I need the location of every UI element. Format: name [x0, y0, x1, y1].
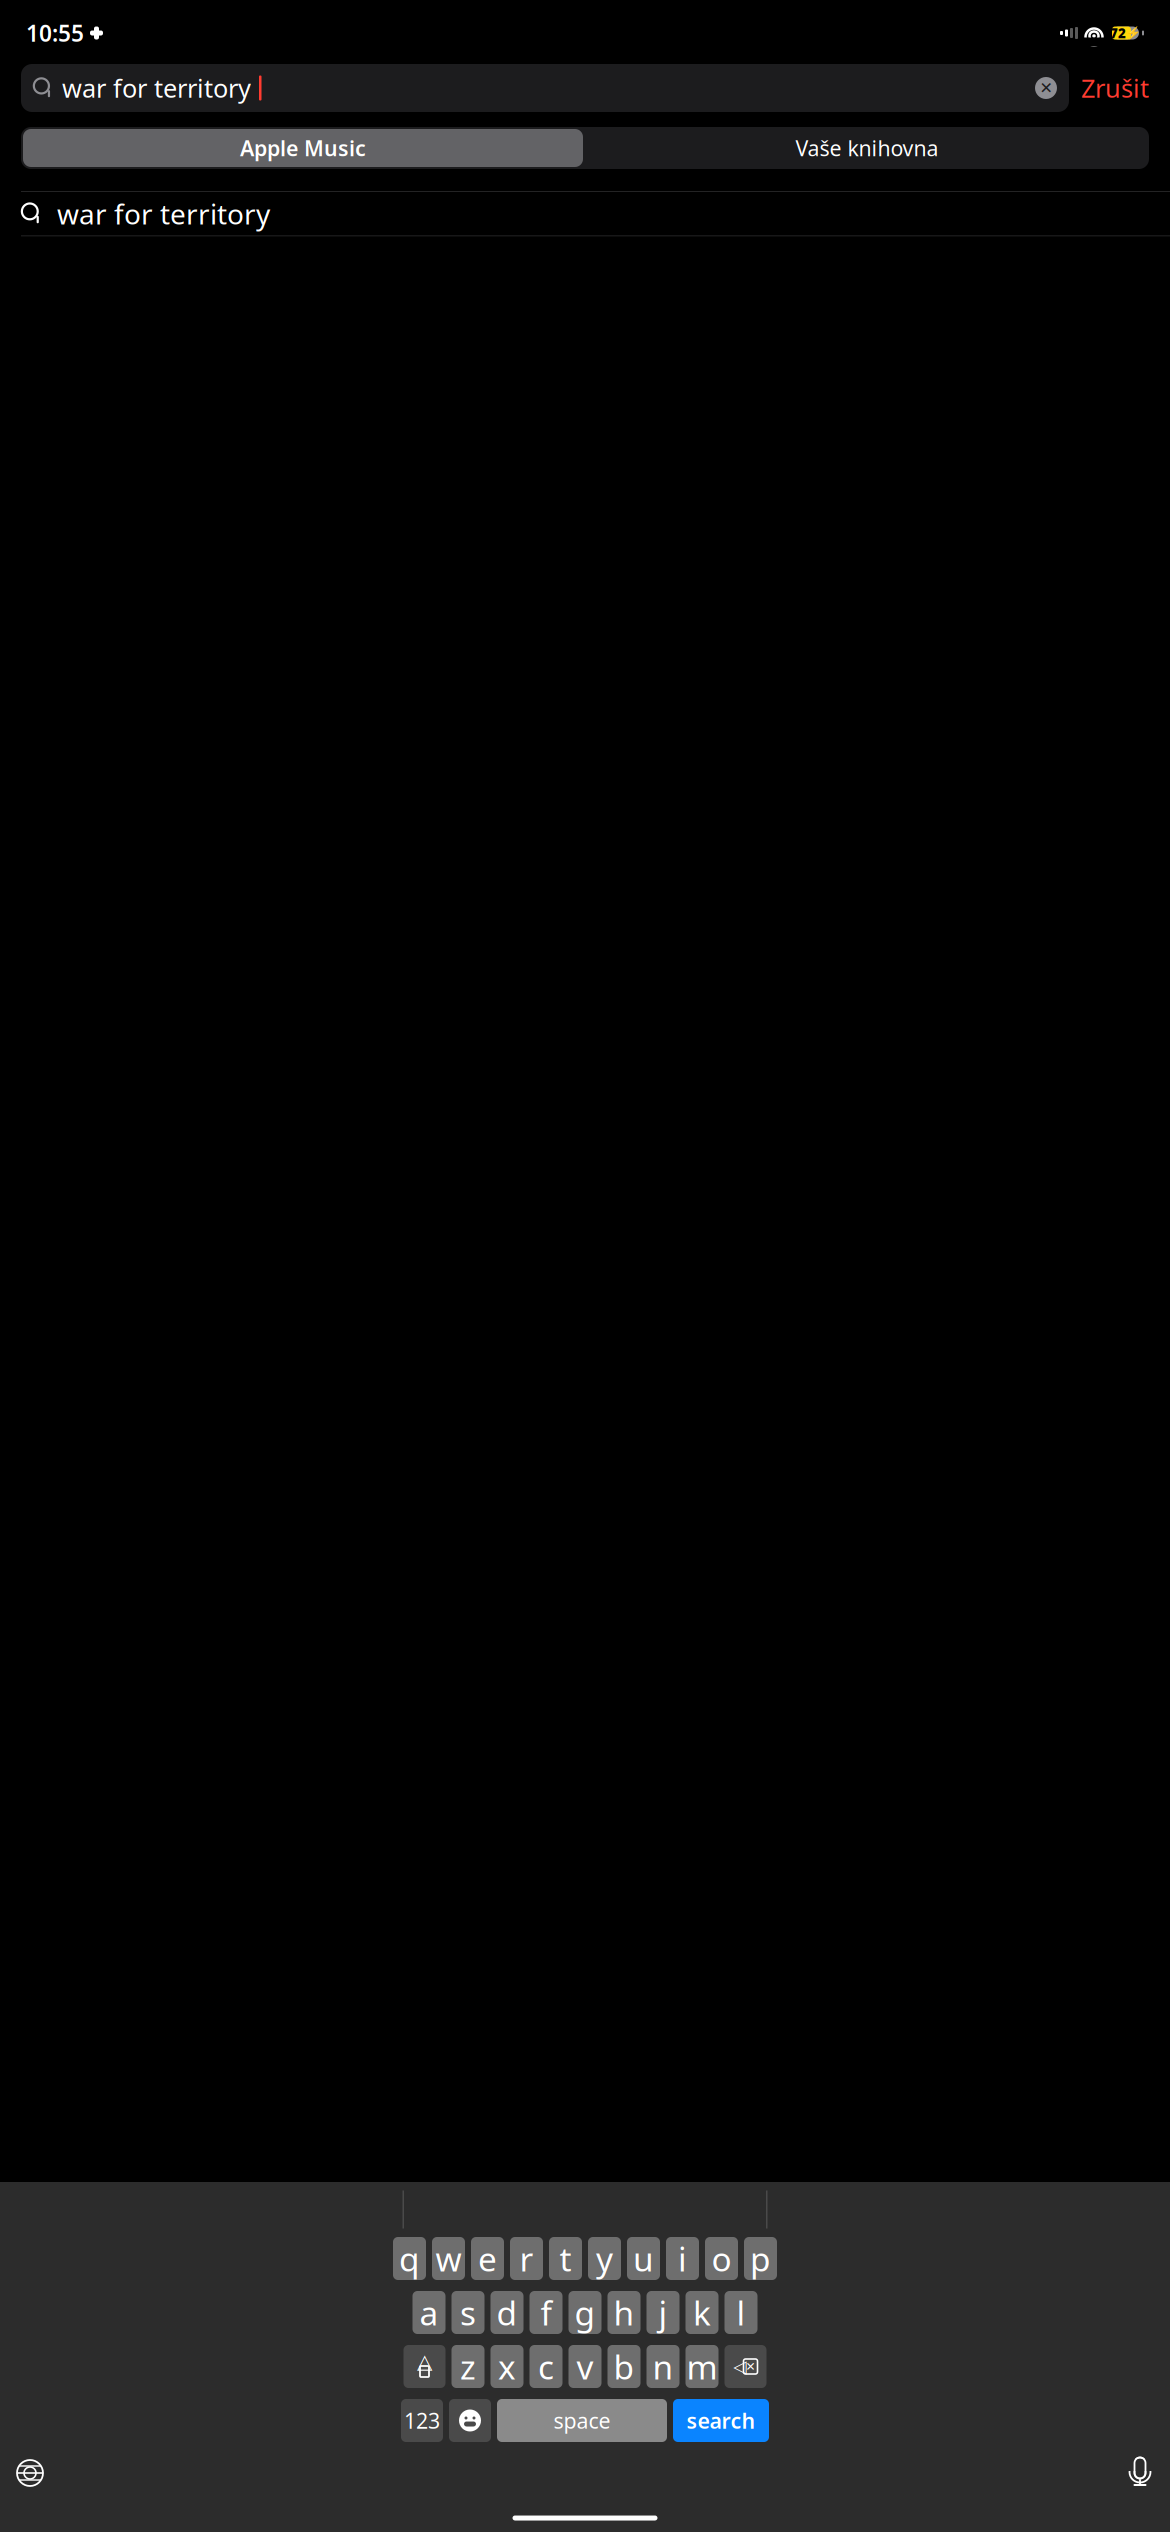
button[interactable]: Next keyboard — [8, 2451, 52, 2495]
staticText: w — [435, 2236, 461, 2281]
button[interactable]: Shift — [403, 2345, 445, 2388]
staticText: ◁ — [733, 2357, 746, 2376]
staticText: a — [419, 2290, 438, 2335]
staticText: ⚡ — [1126, 26, 1141, 40]
staticText: 123 — [404, 2406, 440, 2435]
staticText: h — [613, 2290, 634, 2335]
staticText: space — [553, 2406, 610, 2435]
button[interactable]: Delete — [724, 2345, 766, 2388]
staticText: 10:55 — [26, 18, 84, 48]
staticText: s — [460, 2290, 476, 2335]
button[interactable]: 123 — [401, 2399, 443, 2442]
button[interactable]: d — [490, 2291, 523, 2334]
staticText: c — [538, 2344, 554, 2389]
button[interactable]: a — [412, 2291, 445, 2334]
button[interactable]: c — [529, 2345, 562, 2388]
staticText: war for territory — [62, 71, 251, 105]
staticText: Apple Music — [240, 134, 366, 162]
button[interactable]: u — [627, 2237, 660, 2280]
staticText: g — [574, 2290, 595, 2335]
staticText: Zrušit — [1081, 71, 1149, 105]
button[interactable]: search — [673, 2399, 769, 2442]
staticText: l — [736, 2290, 745, 2335]
button[interactable]: space — [497, 2399, 667, 2442]
staticText: war for territory — [57, 195, 270, 232]
staticText: o — [711, 2236, 731, 2281]
button[interactable]: war for territory — [0, 192, 1170, 236]
staticText: j — [658, 2290, 667, 2335]
staticText: x — [498, 2344, 516, 2389]
button[interactable]: k — [685, 2291, 718, 2334]
button[interactable]: Emoji — [449, 2399, 491, 2442]
staticText: f — [540, 2290, 551, 2335]
button[interactable]: t — [549, 2237, 582, 2280]
staticText: t — [559, 2236, 571, 2281]
button[interactable]: w — [432, 2237, 465, 2280]
button[interactable]: Dictation — [1118, 2451, 1162, 2495]
staticText: u — [633, 2236, 654, 2281]
staticText: 72 — [1110, 24, 1126, 42]
staticText: m — [686, 2344, 717, 2389]
button[interactable]: m — [685, 2345, 718, 2388]
staticText: p — [750, 2236, 771, 2281]
button[interactable]: Vaše knihovna — [585, 127, 1149, 169]
staticText: search — [686, 2406, 755, 2435]
button[interactable]: Clear text — [1029, 71, 1063, 105]
button[interactable]: h — [607, 2291, 640, 2334]
staticText: ✕ — [1039, 79, 1052, 97]
button[interactable]: s — [451, 2291, 484, 2334]
button[interactable]: j — [646, 2291, 679, 2334]
button[interactable]: x — [490, 2345, 523, 2388]
staticText: k — [693, 2290, 711, 2335]
button[interactable]: q — [393, 2237, 426, 2280]
button[interactable]: y — [588, 2237, 621, 2280]
staticText: z — [460, 2344, 476, 2389]
staticText: b — [613, 2344, 634, 2389]
staticText: q — [399, 2236, 420, 2281]
button[interactable]: n — [646, 2345, 679, 2388]
button[interactable]: Apple Music — [21, 127, 585, 169]
button[interactable]: p — [744, 2237, 777, 2280]
button[interactable]: v — [568, 2345, 601, 2388]
staticText: v — [576, 2344, 593, 2389]
button[interactable]: Zrušit — [1081, 64, 1149, 112]
button[interactable]: r — [510, 2237, 543, 2280]
staticText: r — [519, 2236, 533, 2281]
button[interactable]: l — [724, 2291, 757, 2334]
button[interactable]: e — [471, 2237, 504, 2280]
button[interactable]: i — [666, 2237, 699, 2280]
button[interactable]: f — [529, 2291, 562, 2334]
staticText: i — [678, 2236, 687, 2281]
button[interactable]: b — [607, 2345, 640, 2388]
staticText: d — [496, 2290, 517, 2335]
button[interactable]: g — [568, 2291, 601, 2334]
staticText: e — [478, 2236, 497, 2281]
staticText: n — [652, 2344, 673, 2389]
button[interactable]: z — [451, 2345, 484, 2388]
staticText: Vaše knihovna — [795, 134, 938, 162]
staticText: △ — [417, 2350, 432, 2373]
button[interactable]: o — [705, 2237, 738, 2280]
staticText: y — [596, 2236, 613, 2281]
staticText: ✕ — [745, 2360, 755, 2373]
